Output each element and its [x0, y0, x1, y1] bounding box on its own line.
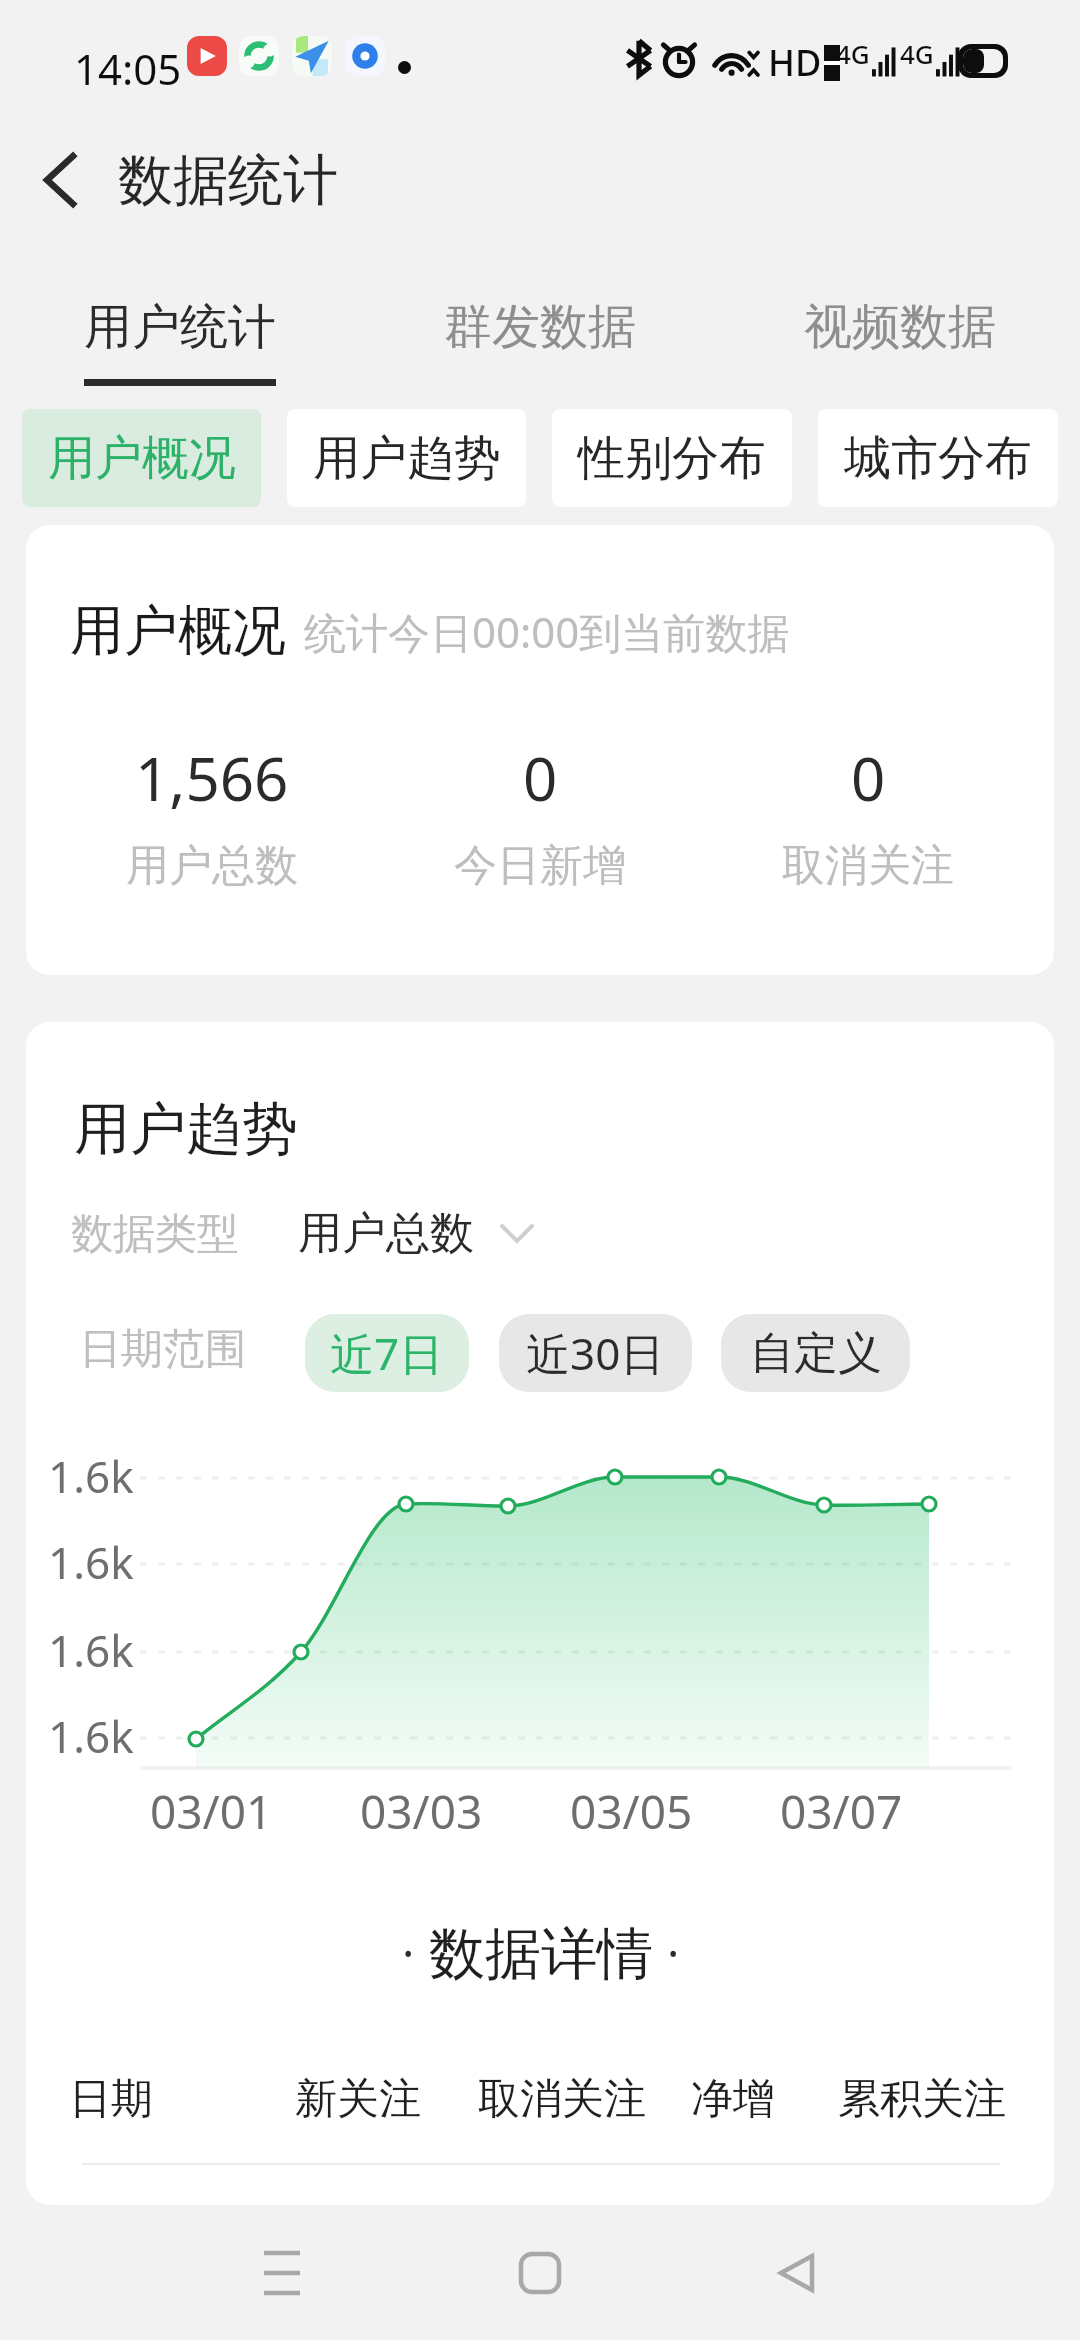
staticText: 新关注 — [295, 2073, 421, 2126]
staticText: 用户概况 — [48, 429, 236, 488]
staticText: 今日新增 — [454, 839, 626, 893]
staticText: 1.6k — [48, 1706, 134, 1766]
staticText: 视频数据 — [804, 297, 996, 357]
staticText: 1,566 — [135, 737, 289, 819]
staticText: 取消关注 — [478, 2073, 646, 2126]
button[interactable]: Home — [470, 2205, 610, 2340]
staticText: · — [667, 1921, 680, 1984]
staticText: HD — [768, 38, 822, 87]
button[interactable]: 用户统计 — [0, 250, 360, 409]
button[interactable]: 自定义 — [721, 1314, 910, 1392]
staticText: 14:05 — [74, 40, 182, 97]
button[interactable]: 用户趋势 — [287, 409, 526, 507]
staticText: 数据统计 — [118, 146, 338, 215]
staticText: 用户概况 — [70, 597, 286, 665]
staticText: 数据详情 — [429, 1919, 653, 1990]
staticText: 用户统计 — [84, 297, 276, 357]
staticText: 用户趋势 — [74, 1094, 298, 1165]
staticText: 1.6k — [48, 1620, 134, 1680]
button[interactable]: Recent apps — [212, 2205, 352, 2340]
staticText: 净增 — [691, 2073, 775, 2126]
staticText: 1.6k — [48, 1446, 134, 1506]
staticText: 日期范围 — [79, 1323, 247, 1376]
staticText: 03/07 — [780, 1780, 903, 1843]
staticText: 03/01 — [150, 1780, 273, 1843]
staticText: 取消关注 — [782, 839, 954, 893]
staticText: 累积关注 — [838, 2073, 1006, 2126]
staticText: 0 — [523, 737, 558, 819]
staticText: 城市分布 — [844, 429, 1032, 488]
button[interactable]: 用户概况 — [22, 409, 261, 507]
button[interactable]: 群发数据 — [360, 250, 720, 409]
staticText: 用户总数 — [126, 839, 298, 893]
staticText: 用户总数 — [298, 1206, 474, 1261]
button[interactable]: 近30日 — [499, 1314, 692, 1392]
staticText: 4G — [836, 36, 870, 71]
staticText: 近30日 — [526, 1323, 665, 1383]
staticText: 日期 — [69, 2073, 153, 2126]
button[interactable]: 性别分布 — [552, 409, 792, 507]
staticText: 近7日 — [330, 1323, 444, 1383]
staticText: · — [402, 1921, 415, 1984]
staticText: 群发数据 — [444, 297, 636, 357]
button[interactable]: Back — [726, 2205, 866, 2340]
staticText: 03/05 — [570, 1780, 693, 1843]
staticText: 4G — [900, 36, 934, 71]
button[interactable]: 城市分布 — [818, 409, 1058, 507]
button[interactable]: Back — [10, 130, 110, 230]
staticText: 用户趋势 — [313, 429, 501, 488]
staticText: 0 — [851, 737, 886, 819]
staticText: 03/03 — [360, 1780, 483, 1843]
staticText: 1.6k — [48, 1532, 134, 1592]
staticText: 自定义 — [750, 1326, 882, 1381]
staticText: 性别分布 — [578, 429, 766, 488]
button[interactable]: 视频数据 — [720, 250, 1080, 409]
button[interactable]: 近7日 — [305, 1314, 469, 1392]
staticText: 统计今日00:00到当前数据 — [304, 603, 790, 660]
button[interactable]: 用户总数 — [290, 1200, 542, 1267]
staticText: 数据类型 — [71, 1208, 239, 1261]
